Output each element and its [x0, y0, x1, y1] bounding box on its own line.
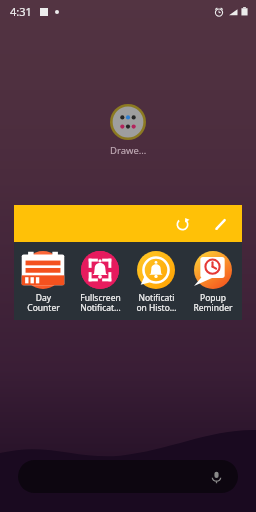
staticText: Notificati on Histo… — [136, 292, 177, 313]
staticText: Fullscreen Notificat… — [80, 292, 121, 313]
staticText: Popup Reminder — [193, 292, 233, 313]
button[interactable]: Notificati on Histo… — [129, 251, 183, 313]
staticText: Drawe… — [110, 144, 147, 157]
staticText: Day Counter — [27, 292, 60, 313]
button[interactable]: Popup Reminder — [186, 251, 240, 313]
button[interactable]: Refresh — [170, 212, 194, 236]
button[interactable]: Edit — [208, 212, 232, 236]
button[interactable]: Day Counter — [16, 251, 70, 313]
button[interactable]: Fullscreen Notificat… — [73, 251, 127, 313]
staticText: 4:31 — [10, 4, 32, 19]
button[interactable]: Voice search — [206, 467, 226, 487]
button[interactable]: Drawer — [103, 104, 153, 157]
button[interactable]: Search — [18, 460, 238, 493]
